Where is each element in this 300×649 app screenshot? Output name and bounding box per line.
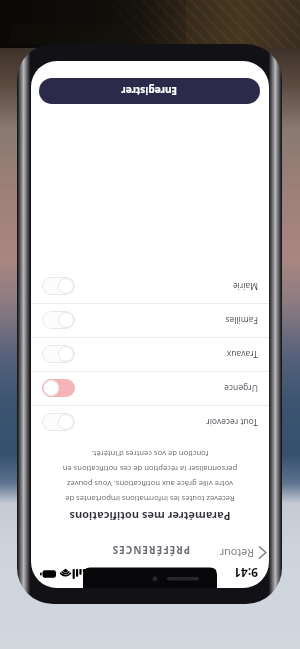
staticText: Travaux <box>226 348 258 360</box>
other: Retour <box>257 546 268 559</box>
button[interactable]: Enregistrer <box>39 78 260 104</box>
staticText: Familles <box>225 314 258 326</box>
button[interactable]: Retour <box>219 544 268 562</box>
button[interactable]: Tout recevoir <box>31 405 269 439</box>
staticText: PRÉFÉRENCES <box>111 543 190 557</box>
staticText: Urgence <box>224 382 258 394</box>
staticText: Recevez toutes les informations importan… <box>45 449 255 504</box>
button[interactable]: Familles <box>31 303 269 337</box>
button[interactable]: Travaux <box>31 337 269 371</box>
staticText: Enregistrer <box>121 84 177 98</box>
staticText: 9:41 <box>234 565 258 581</box>
staticText: Tout recevoir <box>206 416 258 428</box>
staticText: Paramétrer mes notifications <box>31 509 269 524</box>
button[interactable]: Mairie <box>31 270 269 303</box>
button[interactable]: Urgence <box>31 371 269 405</box>
staticText: Retour <box>219 545 254 560</box>
staticText: Mairie <box>232 280 258 292</box>
